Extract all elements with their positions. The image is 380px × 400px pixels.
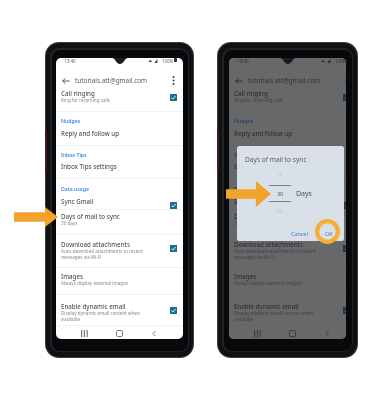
button[interactable]: Sync Gmail <box>229 197 346 205</box>
staticText: Inbox Tips <box>61 151 87 158</box>
button[interactable]: Reply and follow up <box>229 129 346 137</box>
button[interactable]: Days of mail to sync <box>229 212 346 226</box>
button[interactable]: Back <box>321 327 334 339</box>
button[interactable]: OK <box>322 227 336 240</box>
button[interactable]: Back <box>148 327 161 339</box>
button[interactable]: Home <box>113 327 126 339</box>
staticText: Nudges <box>234 117 254 124</box>
staticText: 13:40 <box>64 58 76 64</box>
button[interactable]: Sync Gmail <box>343 202 346 209</box>
staticText: Inbox Tips settings <box>61 162 117 170</box>
staticText: Download attachments <box>234 240 303 248</box>
button[interactable]: More options <box>168 75 179 86</box>
button[interactable]: Images <box>56 272 183 286</box>
staticText: 30 days <box>61 220 78 226</box>
staticText: Days of mail to sync <box>61 212 120 220</box>
staticText: Data usage <box>234 185 262 192</box>
staticText: Images <box>61 272 83 280</box>
staticText: Display dynamic email content when <box>61 310 141 316</box>
staticText: messages via Wi-Fi <box>61 254 102 260</box>
button[interactable]: Inbox Tips settings <box>56 162 183 170</box>
button[interactable]: Recent apps <box>251 327 264 339</box>
staticText: Call ringing <box>61 89 95 97</box>
button[interactable]: Navigate up <box>60 75 72 87</box>
staticText: Always display external images <box>234 280 301 286</box>
staticText: 30 days <box>234 220 251 226</box>
button[interactable]: More options <box>341 75 346 86</box>
staticText: Always display external images <box>61 280 128 286</box>
button[interactable]: Sync Gmail <box>170 202 177 209</box>
staticText: 100% <box>162 58 174 64</box>
staticText: Display dynamic email content when <box>234 310 314 316</box>
staticText: Enable dynamic email <box>61 302 126 310</box>
staticText: Auto-download attachments to recent <box>234 248 316 254</box>
staticText: OK <box>325 230 333 237</box>
staticText: Days of mail to sync <box>234 212 293 220</box>
staticText: Ring for incoming calls <box>61 97 111 103</box>
staticText: Download attachments <box>61 240 130 248</box>
staticText: Days of mail to sync <box>245 155 307 164</box>
staticText: Ring for incoming calls <box>234 97 284 103</box>
button[interactable]: Enable dynamic email <box>56 302 183 322</box>
staticText: Sync Gmail <box>234 197 267 205</box>
staticText: Data usage <box>61 185 89 192</box>
staticText: Nudges <box>61 117 81 124</box>
button[interactable]: Cancel <box>288 227 311 240</box>
staticText: 13:40 <box>237 58 249 64</box>
staticText: 15 <box>277 172 283 178</box>
staticText: Cancel <box>291 230 308 237</box>
button[interactable]: Sync Gmail <box>56 197 183 205</box>
staticText: 100% <box>335 58 346 64</box>
staticText: Images <box>234 272 256 280</box>
button[interactable]: Days of mail to sync <box>237 146 344 241</box>
button[interactable]: Enable dynamic email <box>229 302 346 322</box>
staticText: Auto-download attachments to recent <box>61 248 143 254</box>
button[interactable]: Home <box>286 327 299 339</box>
button[interactable]: Call ringing <box>229 89 346 103</box>
button[interactable]: Download attachments <box>229 240 346 260</box>
staticText: tutorials.att@gmail.com <box>75 76 148 85</box>
button[interactable]: Days of mail to sync <box>56 212 183 226</box>
staticText: Inbox Tips settings <box>234 162 290 170</box>
button[interactable]: Call ringing <box>170 94 177 101</box>
button[interactable]: Download attachments <box>343 245 346 252</box>
button[interactable]: Images <box>229 272 346 286</box>
button[interactable]: Call ringing <box>343 94 346 101</box>
staticText: messages via Wi-Fi <box>234 254 275 260</box>
staticText: Sync Gmail <box>61 197 94 205</box>
staticText: 30 <box>277 190 284 197</box>
staticText: Days <box>296 189 312 199</box>
button[interactable]: Enable dynamic email <box>170 307 177 314</box>
button[interactable]: Enable dynamic email <box>343 307 346 314</box>
staticText: available <box>234 316 254 322</box>
staticText: Call ringing <box>234 89 268 97</box>
button[interactable]: Call ringing <box>56 89 183 103</box>
button[interactable]: Navigate up <box>233 75 245 87</box>
staticText: Enable dynamic email <box>234 302 299 310</box>
staticText: Reply and follow up <box>234 129 293 137</box>
staticText: Inbox Tips <box>234 151 260 158</box>
staticText: Reply and follow up <box>61 129 120 137</box>
staticText: tutorials.att@gmail.com <box>248 76 321 85</box>
button[interactable]: Recent apps <box>78 327 91 339</box>
button[interactable]: Inbox Tips settings <box>229 162 346 170</box>
staticText: 90 <box>277 208 283 214</box>
button[interactable]: Download attachments <box>56 240 183 260</box>
staticText: available <box>61 316 81 322</box>
button[interactable]: Download attachments <box>170 245 177 252</box>
button[interactable]: Reply and follow up <box>56 129 183 137</box>
